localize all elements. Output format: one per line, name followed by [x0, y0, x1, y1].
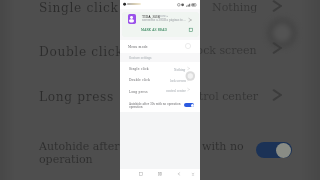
staticText: lock screen [193, 44, 257, 57]
staticText: TIDA_SGB [142, 15, 160, 19]
button[interactable]: Autohide after 30s with no operation [120, 99, 200, 111]
staticText: Nothing [174, 68, 186, 71]
button[interactable]: Home [156, 169, 164, 178]
staticText: Long press [129, 90, 148, 94]
staticText: nerem-me a 30GB a páginas to ... [142, 19, 186, 22]
staticText: Single click [39, 1, 119, 15]
staticText: lock screen [170, 79, 186, 82]
button[interactable]: Menu mode [120, 40, 200, 52]
button[interactable]: Double click [120, 73, 200, 84]
staticText: control center [179, 90, 259, 103]
staticText: Autohide after 30s with no operation [129, 102, 181, 105]
staticText: control center [166, 89, 186, 92]
staticText: Menu mode [128, 45, 148, 49]
staticText: Double click [129, 78, 151, 82]
staticText: with no [202, 140, 244, 153]
staticText: • now ▸ [158, 15, 168, 18]
staticText: Autohide after [39, 140, 120, 153]
staticText: operation [129, 105, 143, 108]
staticText: Single click [129, 67, 149, 71]
button[interactable]: Recent apps [137, 169, 145, 178]
staticText: operation [39, 153, 93, 166]
staticText: MARK AS READ [141, 28, 168, 31]
button[interactable]: Single click [120, 62, 200, 73]
staticText: Long press [39, 90, 114, 104]
staticText: Nothing [212, 1, 258, 14]
button[interactable]: TIDA_SGB [122, 12, 199, 37]
button[interactable]: Hide keyboard [189, 169, 197, 178]
staticText: Double click [39, 45, 124, 59]
staticText: Gesture settings [129, 56, 152, 59]
button[interactable]: Back [175, 169, 183, 178]
button[interactable]: Long press [120, 85, 200, 96]
